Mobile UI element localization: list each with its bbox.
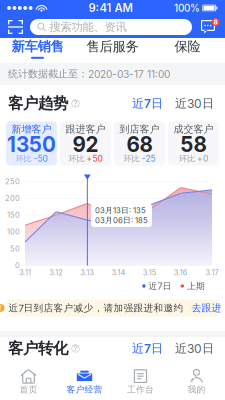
staticText: 68 xyxy=(126,136,152,153)
button[interactable]: 近7日 xyxy=(129,342,166,355)
staticText: 去跟进 › xyxy=(191,303,225,313)
staticText: 近7日 xyxy=(132,98,163,109)
staticText: ? xyxy=(73,345,77,352)
button[interactable]: 我的 xyxy=(168,364,224,398)
staticText: 近7日 xyxy=(132,343,163,354)
staticText: 近7日 xyxy=(149,282,172,290)
staticText: 8 xyxy=(213,19,217,25)
staticText: +0 xyxy=(197,155,208,162)
staticText: 3.13 xyxy=(80,269,94,276)
staticText: 到店客户 xyxy=(119,125,159,134)
staticText: -25 xyxy=(141,155,155,162)
staticText: ? xyxy=(73,100,77,107)
button[interactable]: 新增客户 xyxy=(6,121,57,165)
staticText: 保险 xyxy=(174,40,200,53)
staticText: 3.12 xyxy=(49,269,63,276)
staticText: 9:41 AM xyxy=(88,2,132,13)
button[interactable]: 跟进客户 xyxy=(60,121,111,165)
staticText: 环比 xyxy=(179,155,195,162)
staticText: 成交客户 xyxy=(173,125,213,134)
staticText: 3.14 xyxy=(111,269,125,276)
staticText: 100 xyxy=(7,228,20,235)
staticText: ! xyxy=(0,305,2,311)
staticText: 首页 xyxy=(19,385,37,394)
staticText: 0 xyxy=(15,262,20,269)
button[interactable]: 工作台 xyxy=(112,364,168,398)
staticText: 03月13日: 135 xyxy=(95,206,146,214)
staticText: 环比 xyxy=(68,155,84,162)
staticText: 92 xyxy=(72,136,98,153)
button[interactable]: 客户经营 xyxy=(56,364,112,398)
staticText: 1350 xyxy=(7,136,56,153)
staticText: 3.17 xyxy=(205,269,218,276)
staticText: 客户转化 xyxy=(8,341,68,356)
staticText: 58 xyxy=(180,136,206,153)
button[interactable]: 售后服务 xyxy=(75,38,150,63)
button[interactable]: ! xyxy=(7,299,218,316)
staticText: 3.15 xyxy=(143,269,157,276)
staticText: 搜索功能、资讯 xyxy=(49,22,126,32)
staticText: 100% xyxy=(174,3,200,13)
staticText: 150 xyxy=(7,211,20,219)
staticText: 3.11 xyxy=(19,269,31,276)
staticText: 上期 xyxy=(187,282,205,290)
staticText: 环比 xyxy=(15,155,31,162)
staticText: 近30日 xyxy=(175,98,214,109)
staticText: 客户趋势 xyxy=(8,96,68,111)
staticText: 客户经营 xyxy=(66,385,102,394)
staticText: 近30日 xyxy=(175,343,214,354)
button[interactable]: 新车销售 xyxy=(0,38,75,63)
button[interactable]: 消息 xyxy=(198,18,218,36)
staticText: 统计数据截止至：2020-03-17 11:00 xyxy=(8,69,170,79)
button[interactable]: 到店客户 xyxy=(114,121,165,165)
staticText: 200 xyxy=(5,195,20,202)
button[interactable]: 近30日 xyxy=(172,342,217,355)
staticText: 近7日到店客户减少，请加强跟进和邀约 xyxy=(8,303,183,313)
staticText: 新增客户 xyxy=(11,125,51,134)
button[interactable]: 近30日 xyxy=(172,97,217,110)
button[interactable]: 扫一扫 xyxy=(7,18,24,36)
button[interactable]: 成交客户 xyxy=(168,121,219,165)
staticText: 03月06日: 185 xyxy=(95,216,148,224)
staticText: 售后服务 xyxy=(86,40,138,53)
staticText: 新车销售 xyxy=(11,40,63,53)
staticText: 50 xyxy=(10,245,20,252)
button[interactable]: 首页 xyxy=(0,364,56,398)
button[interactable]: 保险 xyxy=(150,38,225,63)
staticText: 工作台 xyxy=(127,385,154,394)
button[interactable]: 近7日 xyxy=(129,97,166,110)
staticText: 跟进客户 xyxy=(65,125,105,134)
staticText: 环比 xyxy=(123,155,139,162)
staticText: 3.16 xyxy=(174,269,188,276)
staticText: -50 xyxy=(33,155,47,162)
staticText: +50 xyxy=(86,155,102,162)
staticText: 我的 xyxy=(187,385,205,394)
staticText: 250 xyxy=(5,178,20,185)
